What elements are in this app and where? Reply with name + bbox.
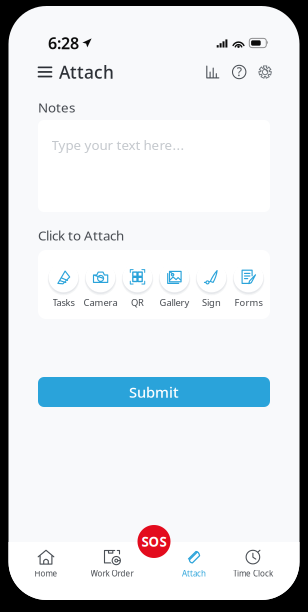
button[interactable]: QR: [119, 258, 156, 310]
staticText: Forms: [234, 296, 262, 309]
staticText: Work Order: [90, 568, 133, 579]
staticText: 6:28: [48, 32, 79, 54]
staticText: Tasks: [52, 296, 74, 309]
staticText: Camera: [83, 296, 117, 309]
button[interactable]: Work Order: [81, 542, 143, 586]
button[interactable]: Attach: [38, 60, 114, 83]
button[interactable]: Time Clock: [222, 542, 284, 586]
button[interactable]: Reports: [206, 65, 219, 78]
staticText: Attach: [182, 568, 206, 579]
staticText: Gallery: [159, 296, 189, 309]
button[interactable]: Submit: [38, 377, 270, 407]
staticText: SOS: [141, 533, 166, 550]
staticText: QR: [131, 296, 144, 309]
button[interactable]: Settings: [258, 65, 272, 79]
staticText: Notes: [38, 98, 75, 116]
button[interactable]: Help: [232, 65, 246, 79]
staticText: Type your text here...: [51, 136, 184, 154]
staticText: Time Clock: [233, 568, 273, 579]
button[interactable]: Tasks: [45, 258, 82, 310]
staticText: Sign: [202, 296, 221, 309]
button[interactable]: Sign: [193, 258, 230, 310]
button[interactable]: Camera: [82, 258, 119, 310]
staticText: Attach: [59, 60, 114, 83]
staticText: ?: [237, 64, 242, 80]
staticText: Click to Attach: [38, 226, 124, 244]
staticText: Submit: [129, 382, 179, 402]
button[interactable]: SOS: [137, 525, 170, 558]
button[interactable]: Forms: [230, 258, 267, 310]
button[interactable]: Home: [15, 542, 77, 586]
button[interactable]: Gallery: [156, 258, 193, 310]
button[interactable]: Attach: [163, 542, 225, 586]
staticText: Home: [34, 568, 57, 579]
